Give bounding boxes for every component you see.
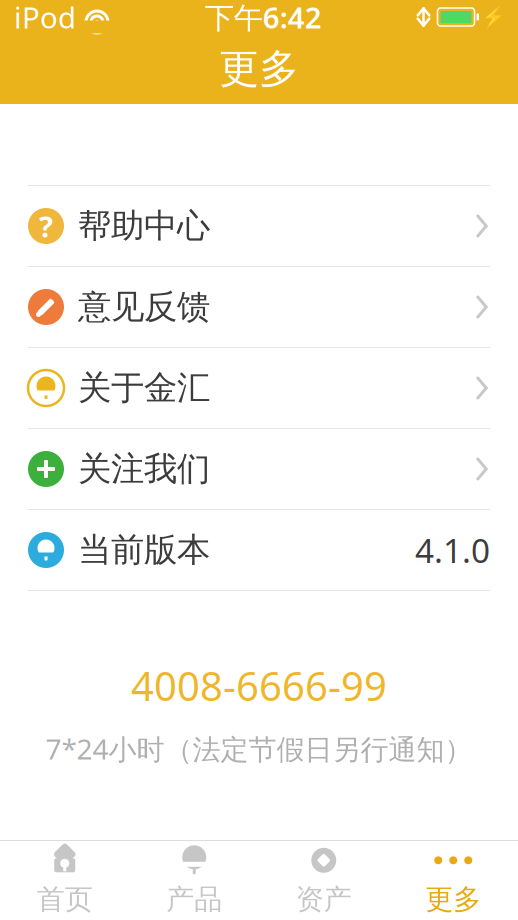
button[interactable]: ? [0,186,518,266]
staticText: 意见反馈 [78,286,210,327]
staticText: 4.1.0 [415,528,490,572]
staticText: 资产 [296,882,352,917]
staticText: 帮助中心 [78,205,210,246]
staticText: iPod [14,0,76,36]
staticText: ⚡ [481,6,506,28]
button[interactable]: 关注我们 [0,429,518,509]
staticText: 首页 [37,882,93,917]
button[interactable]: 4008-6666-99 [0,653,518,773]
staticText: 关于金汇 [78,367,210,408]
button[interactable]: 首页 [0,841,129,920]
button[interactable]: 资产 [259,841,388,920]
staticText: 4008-6666-99 [131,659,387,712]
staticText: ? [39,206,53,245]
button[interactable]: 产品 [129,841,259,920]
staticText: 当前版本 [78,529,210,570]
staticText: 产品 [166,882,222,917]
button[interactable]: 当前版本 [0,510,518,590]
button[interactable]: 意见反馈 [0,267,518,347]
staticText: 更多 [219,44,299,93]
staticText: 7*24小时（法定节假日另行通知） [45,730,472,767]
staticText: 下午6:42 [205,0,322,36]
button[interactable]: 更多 [388,841,518,920]
staticText: 更多 [425,882,481,917]
staticText: 关注我们 [78,448,210,489]
button[interactable]: 关于金汇 [0,348,518,428]
